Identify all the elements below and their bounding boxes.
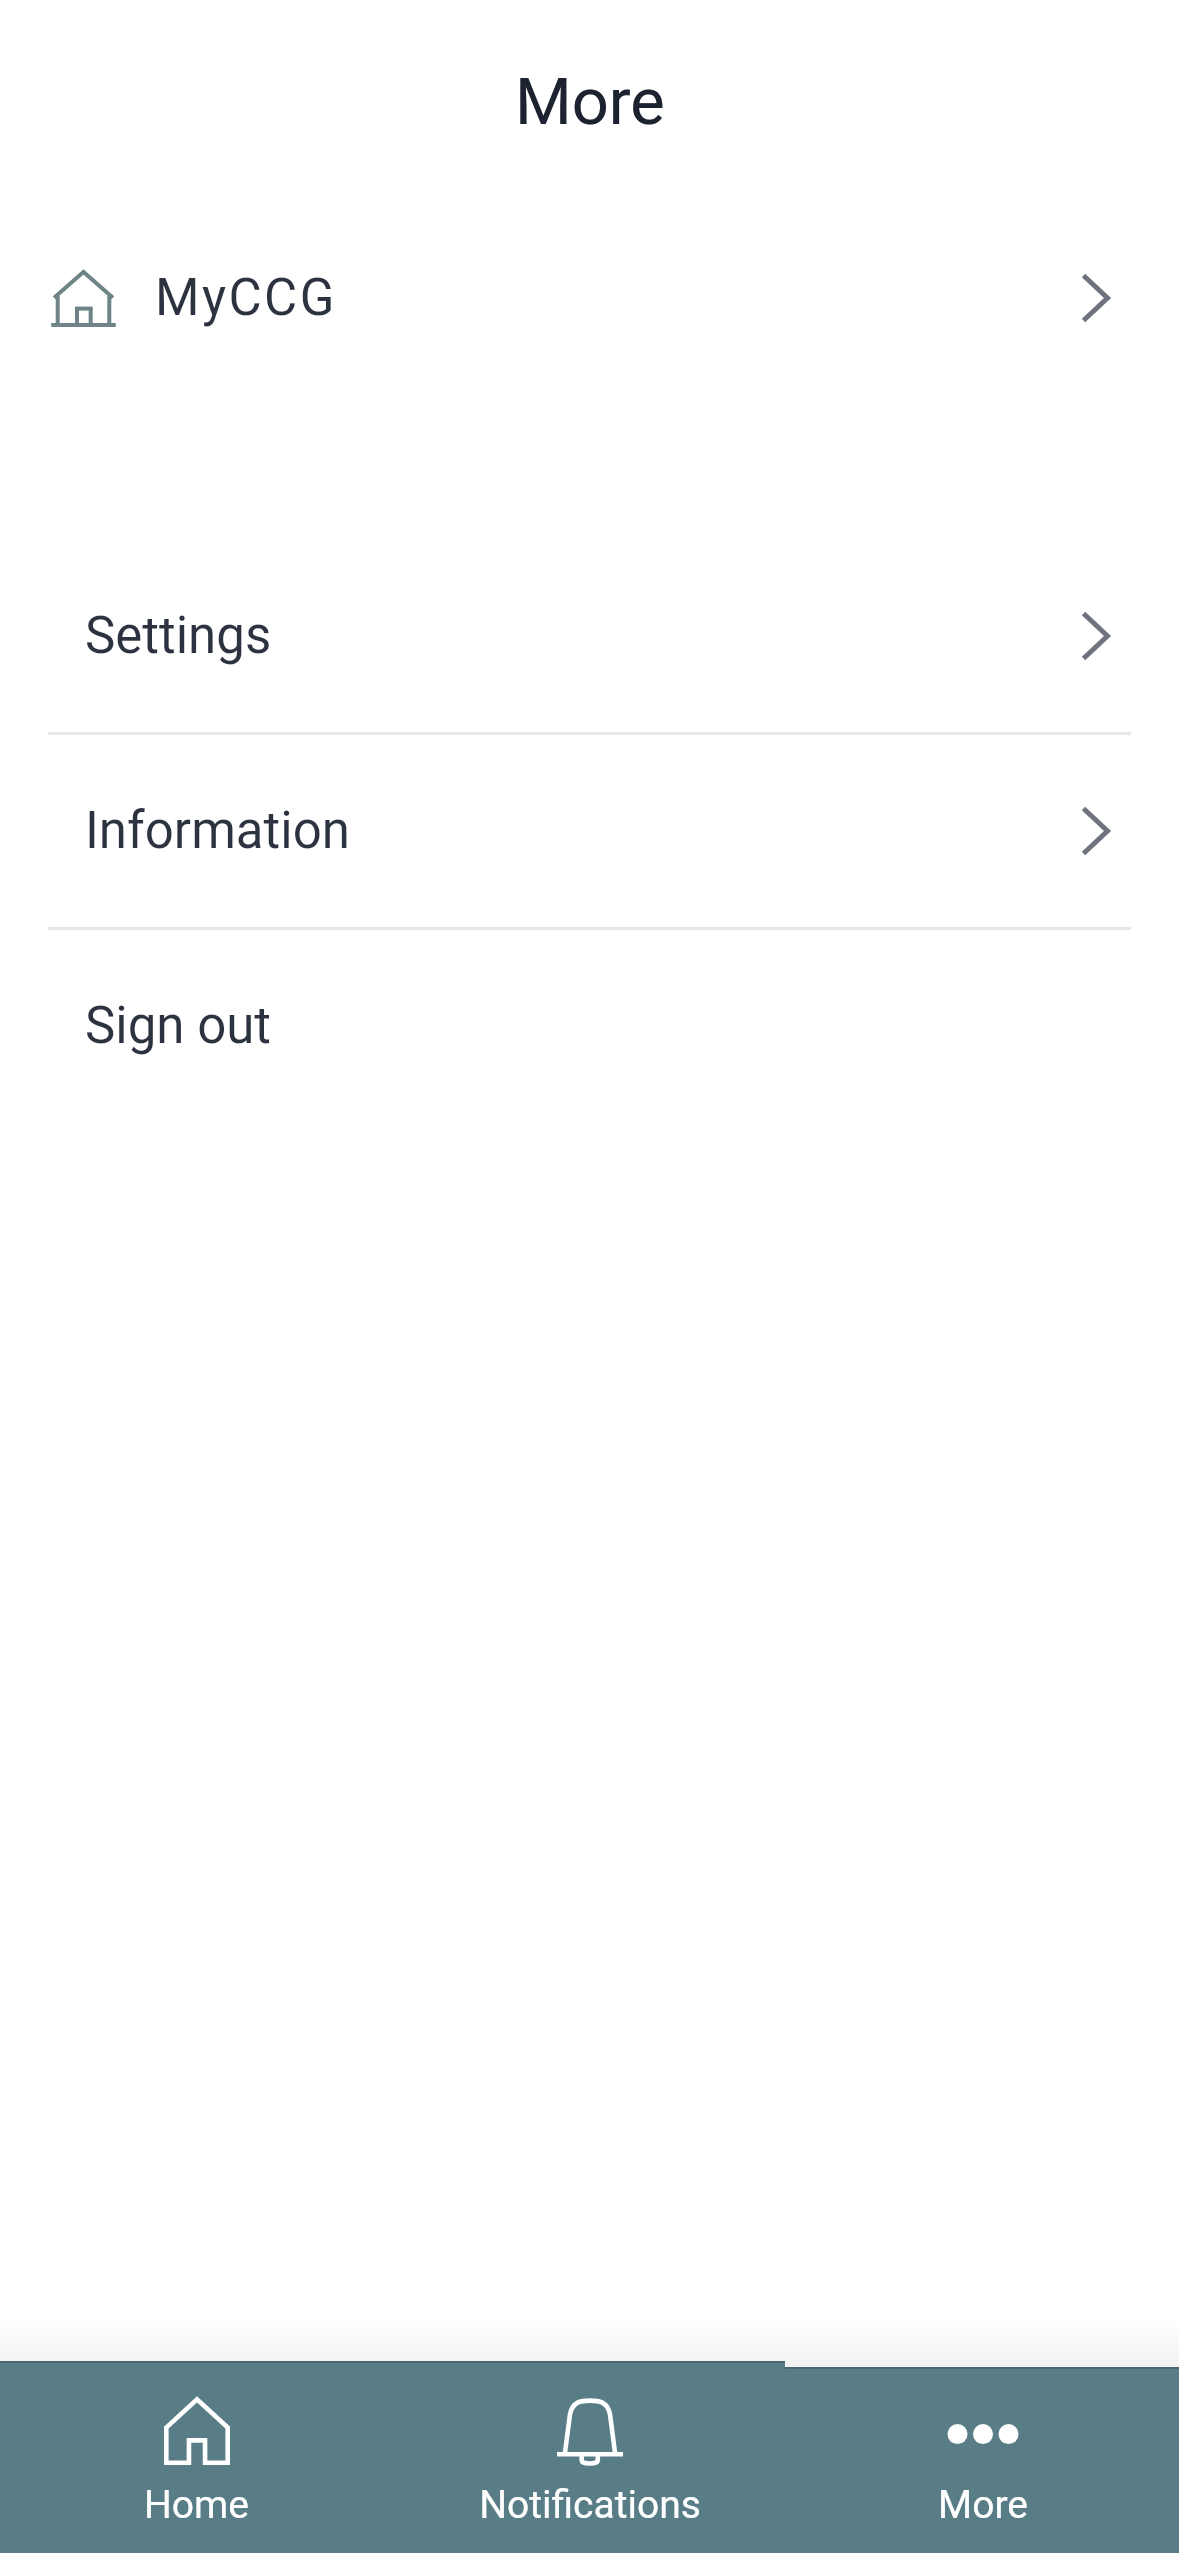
staticText: More xyxy=(938,2482,1028,2528)
other: Open xyxy=(1081,611,1110,661)
button[interactable]: Settings xyxy=(0,540,1179,732)
other: More xyxy=(950,2397,1016,2465)
button[interactable]: Home xyxy=(0,2361,393,2553)
other: Notifications xyxy=(557,2397,623,2465)
other: Open xyxy=(1081,806,1110,856)
staticText: Home xyxy=(144,2482,249,2528)
button[interactable]: More xyxy=(786,2361,1179,2553)
staticText: Information xyxy=(85,801,350,861)
other: Open xyxy=(1081,273,1110,323)
button[interactable]: MyCCG xyxy=(0,218,1179,378)
staticText: Settings xyxy=(85,606,272,666)
staticText: More xyxy=(515,64,665,140)
button[interactable]: Sign out xyxy=(0,930,1179,1122)
staticText: Sign out xyxy=(85,996,272,1056)
other: Home xyxy=(164,2397,230,2465)
staticText: MyCCG xyxy=(155,268,337,328)
button[interactable]: Notifications xyxy=(393,2361,786,2553)
staticText: More xyxy=(515,64,665,140)
staticText: Notifications xyxy=(479,2482,701,2528)
button[interactable]: Information xyxy=(0,735,1179,927)
